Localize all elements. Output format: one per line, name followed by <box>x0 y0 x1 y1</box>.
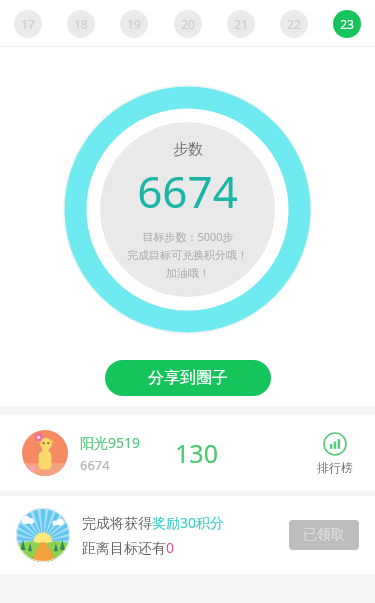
staticText: 目标步数：5000步 <box>142 229 234 244</box>
button[interactable]: 分享到圈子 <box>105 360 271 396</box>
button[interactable]: 已领取 <box>289 520 359 550</box>
staticText: 22 <box>287 16 301 32</box>
staticText: 步数 <box>173 140 203 159</box>
button[interactable]: 22 <box>280 10 308 38</box>
staticText: 距离目标还有0 <box>82 538 175 557</box>
staticText: 已领取 <box>303 526 345 544</box>
staticText: 排行榜 <box>317 460 353 475</box>
button[interactable]: 17 <box>14 10 42 38</box>
button[interactable]: 阳光9519 <box>0 415 375 491</box>
staticText: 6674 <box>137 161 238 221</box>
staticText: 23 <box>340 16 354 32</box>
staticText: 6674 <box>80 456 110 474</box>
staticText: 130 <box>175 436 218 470</box>
staticText: 17 <box>21 16 35 32</box>
staticText: 20 <box>181 16 195 32</box>
button[interactable]: 18 <box>67 10 95 38</box>
staticText: 分享到圈子 <box>148 368 228 388</box>
staticText: 完成目标可兑换积分哦！ <box>127 248 248 262</box>
staticText: 加油哦！ <box>166 266 210 280</box>
staticText: 完成将获得奖励30积分 <box>82 513 225 532</box>
button[interactable]: 排行榜 <box>313 428 357 479</box>
button[interactable]: 19 <box>120 10 148 38</box>
button[interactable]: 完成将获得奖励30积分 <box>0 496 375 574</box>
staticText: 21 <box>234 16 248 32</box>
staticText: 18 <box>74 16 88 32</box>
button[interactable]: 20 <box>174 10 202 38</box>
button[interactable]: 21 <box>227 10 255 38</box>
staticText: 阳光9519 <box>80 433 141 452</box>
staticText: 19 <box>127 16 141 32</box>
button[interactable]: 23 <box>333 10 361 38</box>
